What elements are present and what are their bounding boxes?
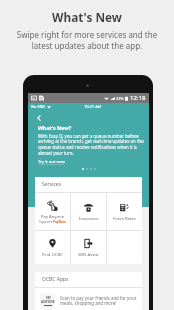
button[interactable]: Pay Anyone	[35, 193, 70, 230]
staticText: Services	[42, 181, 62, 188]
staticText: What's New	[0, 9, 174, 25]
staticText: Insurance	[79, 216, 99, 222]
staticText: With Easy Q, you can get a queue number …	[38, 133, 144, 157]
staticText: Find OCBC	[42, 252, 63, 258]
staticText: 10:37 AM	[84, 104, 102, 109]
staticText: Pay Anyone	[41, 214, 64, 220]
staticText: 12:18	[130, 94, 146, 102]
staticText: What's New?	[38, 124, 72, 131]
staticText: Forex Rates	[113, 216, 136, 222]
staticText: Supports PayNow	[39, 220, 66, 224]
staticText: Swipe right for more services and the la…	[16, 29, 158, 51]
button[interactable]: PAY	[40, 293, 138, 308]
button[interactable]: SMS Assist	[71, 231, 106, 264]
staticText: ANYONE	[41, 300, 55, 304]
staticText: PAY	[46, 296, 51, 300]
staticText: No SIM	[31, 104, 45, 109]
button[interactable]: Insurance	[71, 193, 106, 230]
staticText: Scan to pay your friends and for your me…	[60, 295, 138, 307]
button[interactable]: Try it out now	[38, 159, 65, 165]
button[interactable]: Forex Rates	[107, 193, 142, 230]
button[interactable]: Back	[34, 113, 43, 122]
button[interactable]: Find OCBC	[35, 231, 70, 264]
staticText: SMS Assist	[78, 252, 99, 258]
staticText: 32%	[116, 96, 124, 101]
staticText: OCBC Apps	[42, 276, 69, 283]
